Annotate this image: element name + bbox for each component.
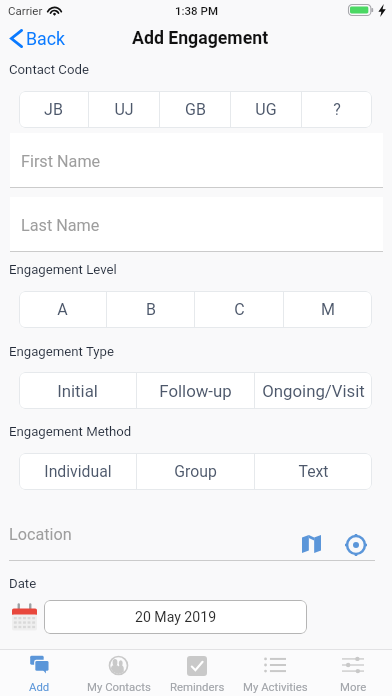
- staticText: Follow-up: [159, 381, 232, 401]
- staticText: Initial: [57, 381, 98, 401]
- staticText: Carrier: [8, 4, 43, 17]
- button[interactable]: Use current location: [341, 530, 371, 560]
- staticText: 20 May 2019: [135, 609, 217, 626]
- button[interactable]: First Name: [10, 133, 383, 187]
- staticText: Engagement Level: [9, 262, 117, 277]
- button[interactable]: Reminders: [158, 650, 236, 696]
- button[interactable]: Text: [255, 453, 372, 490]
- staticText: ?: [333, 100, 341, 119]
- button[interactable]: JB: [19, 91, 88, 128]
- button[interactable]: My Activities: [236, 650, 314, 696]
- button[interactable]: Pick date: [9, 600, 39, 634]
- staticText: Individual: [44, 462, 112, 481]
- staticText: A: [57, 300, 68, 319]
- button[interactable]: Follow-up: [137, 372, 254, 409]
- button[interactable]: Last Name: [10, 197, 383, 251]
- staticText: First Name: [21, 152, 101, 171]
- staticText: Group: [174, 462, 217, 481]
- button[interactable]: C: [195, 291, 283, 328]
- button[interactable]: M: [284, 291, 372, 328]
- staticText: My Contacts: [87, 680, 151, 693]
- button[interactable]: Back: [0, 20, 76, 56]
- staticText: Add: [29, 680, 50, 693]
- button[interactable]: UJ: [89, 91, 159, 128]
- button[interactable]: Open map: [296, 529, 326, 559]
- staticText: Date: [9, 576, 37, 591]
- button[interactable]: GB: [160, 91, 230, 128]
- button[interactable]: 20 May 2019: [44, 600, 307, 634]
- staticText: Location: [9, 525, 72, 544]
- button[interactable]: UG: [231, 91, 301, 128]
- button[interactable]: ?: [302, 91, 372, 128]
- button[interactable]: B: [107, 291, 194, 328]
- button[interactable]: Ongoing/Visit: [255, 372, 372, 409]
- button[interactable]: Location: [9, 517, 289, 551]
- staticText: JB: [44, 100, 63, 119]
- staticText: My Activities: [243, 680, 308, 693]
- button[interactable]: Initial: [19, 372, 136, 409]
- staticText: Contact Code: [9, 62, 89, 77]
- staticText: Text: [298, 462, 329, 481]
- staticText: M: [321, 300, 335, 319]
- button[interactable]: Group: [137, 453, 254, 490]
- staticText: 1:38 PM: [175, 4, 218, 17]
- button[interactable]: More: [314, 650, 392, 696]
- staticText: Add Engagement: [132, 28, 269, 49]
- staticText: Engagement Method: [9, 424, 132, 439]
- staticText: UJ: [114, 100, 134, 119]
- staticText: Ongoing/Visit: [262, 381, 365, 401]
- button[interactable]: Individual: [19, 453, 136, 490]
- staticText: Engagement Type: [9, 344, 114, 359]
- staticText: B: [146, 300, 156, 319]
- button[interactable]: My Contacts: [79, 650, 158, 696]
- staticText: GB: [185, 100, 206, 119]
- staticText: More: [340, 680, 367, 693]
- staticText: Back: [26, 28, 66, 49]
- button[interactable]: Add: [0, 650, 79, 696]
- staticText: Reminders: [170, 680, 225, 693]
- staticText: C: [234, 300, 245, 319]
- button[interactable]: A: [19, 291, 106, 328]
- staticText: Last Name: [21, 216, 100, 235]
- staticText: UG: [255, 100, 277, 119]
